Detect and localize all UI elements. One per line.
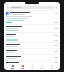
button[interactable]: [4, 55, 60, 60]
button[interactable]: Alerts: [20, 64, 25, 70]
button[interactable]: [10, 6, 54, 9]
button[interactable]: [4, 25, 60, 32]
button[interactable]: Home: [10, 64, 15, 70]
button[interactable]: [4, 61, 60, 64]
button[interactable]: Menu: [6, 6, 9, 9]
button[interactable]: [4, 49, 60, 54]
button[interactable]: [4, 33, 60, 38]
button[interactable]: [4, 43, 60, 48]
button[interactable]: Library: [39, 64, 44, 70]
button[interactable]: [4, 11, 60, 24]
button[interactable]: Browse: [30, 64, 35, 70]
button[interactable]: Account: [55, 6, 58, 9]
button[interactable]: [4, 38, 60, 42]
button[interactable]: More: [49, 64, 54, 70]
